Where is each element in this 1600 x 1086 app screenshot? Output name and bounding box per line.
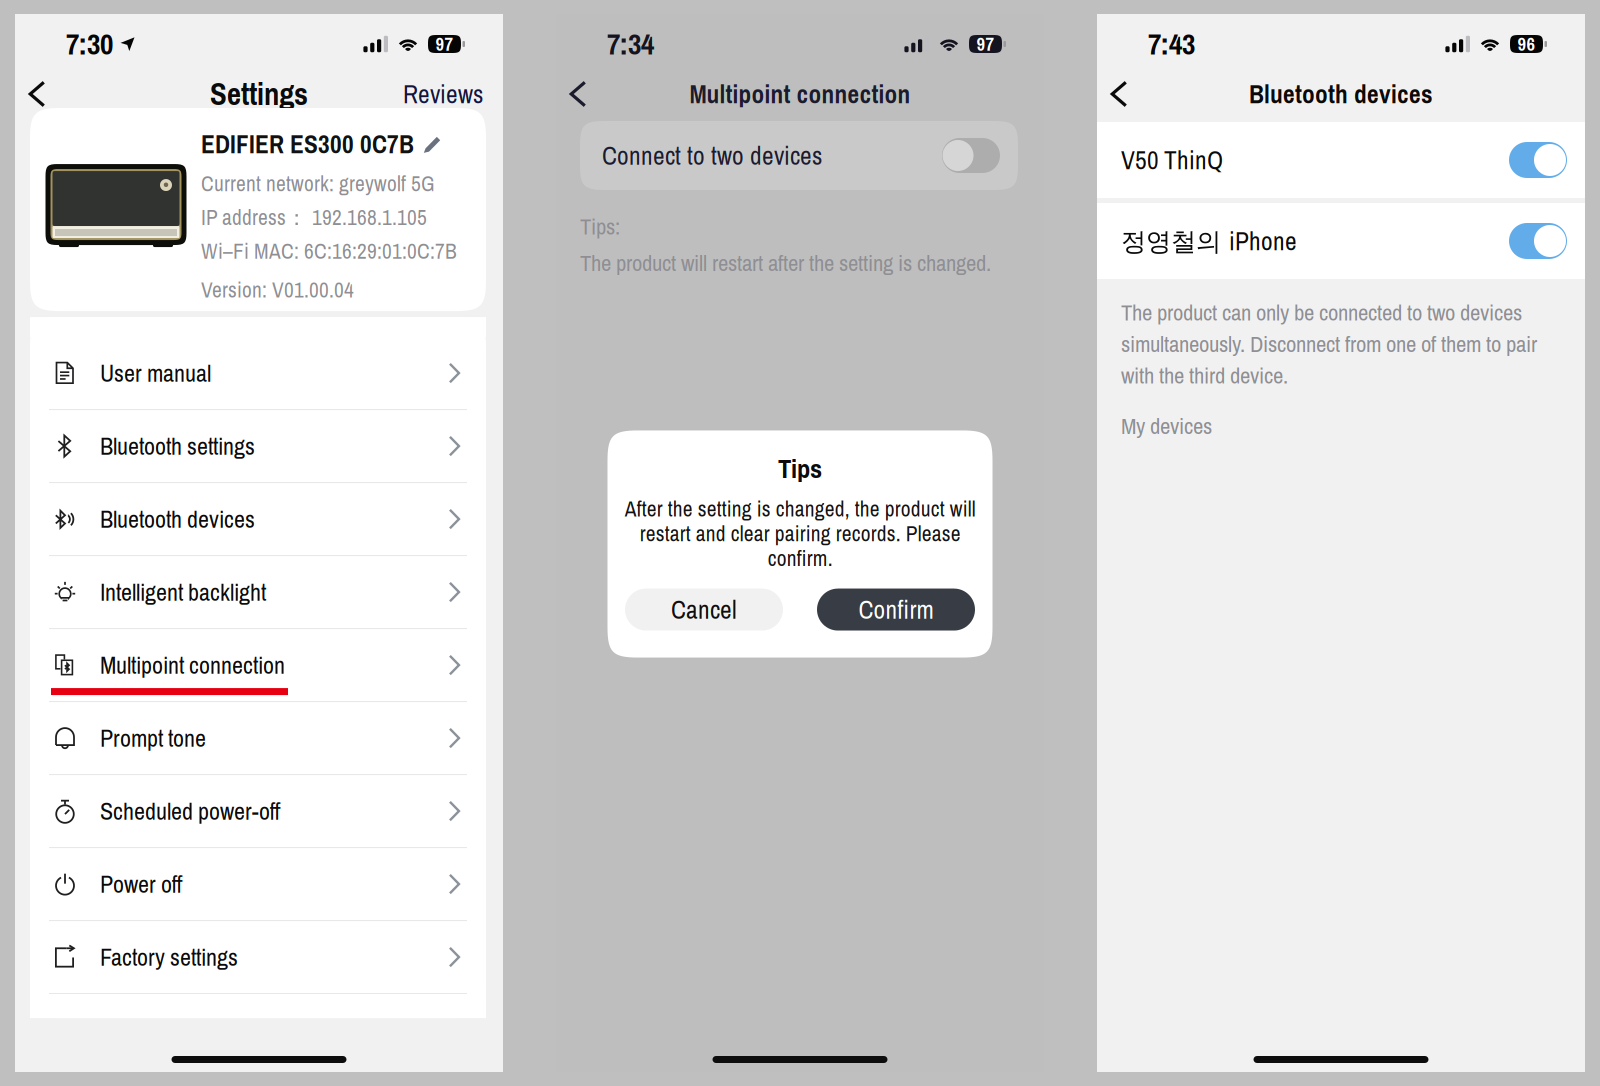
button[interactable]: Connect to two devices — [580, 121, 1018, 190]
staticText: Version: V01.00.04 — [201, 275, 354, 304]
staticText: Wi–Fi MAC: 6C:16:29:01:0C:7B — [201, 237, 457, 265]
staticText: Tips — [778, 450, 822, 486]
staticText: Connect to two devices — [602, 138, 822, 172]
button[interactable]: V50 ThinQ — [1097, 122, 1585, 198]
staticText: After the setting is changed, the produc… — [624, 494, 975, 573]
button[interactable]: Bluetooth settings — [30, 410, 486, 482]
button[interactable]: 정영철의 iPhone — [1097, 203, 1585, 279]
staticText: 7:34 — [607, 24, 654, 64]
button[interactable]: Multipoint connection — [30, 629, 486, 701]
staticText: Settings — [210, 73, 308, 115]
staticText: Power off — [100, 868, 183, 900]
staticText: 96 — [1517, 31, 1535, 56]
button[interactable]: User manual — [30, 337, 486, 409]
staticText: Multipoint connection — [689, 77, 910, 111]
staticText: Multipoint connection — [100, 649, 285, 681]
button[interactable]: Reviews — [387, 70, 505, 118]
staticText: My devices — [1121, 411, 1212, 441]
button[interactable]: Factory settings — [30, 921, 486, 993]
staticText: 정영철의 iPhone — [1121, 224, 1297, 258]
button[interactable]: Prompt tone — [30, 702, 486, 774]
staticText: Prompt tone — [100, 722, 206, 754]
staticText: 7:43 — [1148, 24, 1195, 64]
button[interactable]: Confirm — [817, 589, 975, 631]
staticText: 97 — [976, 31, 994, 56]
staticText: Confirm — [858, 592, 933, 627]
staticText: The product will restart after the setti… — [580, 247, 991, 278]
button[interactable]: Back — [554, 70, 602, 118]
staticText: Intelligent backlight — [100, 576, 266, 608]
staticText: Tips: — [580, 211, 620, 241]
staticText: 7:30 — [66, 24, 113, 64]
staticText: Reviews — [403, 77, 483, 111]
button[interactable]: Intelligent backlight — [30, 556, 486, 628]
staticText: 97 — [435, 31, 453, 56]
staticText: Current network: greywolf 5G — [201, 169, 435, 198]
button[interactable]: Back — [13, 70, 61, 118]
staticText: User manual — [100, 357, 211, 389]
button[interactable]: Cancel — [625, 589, 783, 631]
staticText: The product can only be connected to two… — [1121, 297, 1537, 391]
staticText: Bluetooth settings — [100, 430, 255, 462]
staticText: Bluetooth devices — [1249, 77, 1433, 111]
button[interactable]: Rename device — [423, 135, 441, 153]
button[interactable]: Back — [1095, 70, 1143, 118]
button[interactable]: Bluetooth devices — [30, 483, 486, 555]
staticText: Scheduled power-off — [100, 795, 281, 827]
button[interactable]: Scheduled power-off — [30, 775, 486, 847]
staticText: Factory settings — [100, 941, 238, 973]
staticText: V50 ThinQ — [1121, 143, 1223, 177]
button[interactable]: Power off — [30, 848, 486, 920]
staticText: Bluetooth devices — [100, 503, 255, 535]
staticText: Cancel — [671, 592, 737, 627]
staticText: IP address： 192.168.1.105 — [201, 203, 427, 232]
staticText: EDIFIER ES300 0C7B — [201, 127, 414, 161]
